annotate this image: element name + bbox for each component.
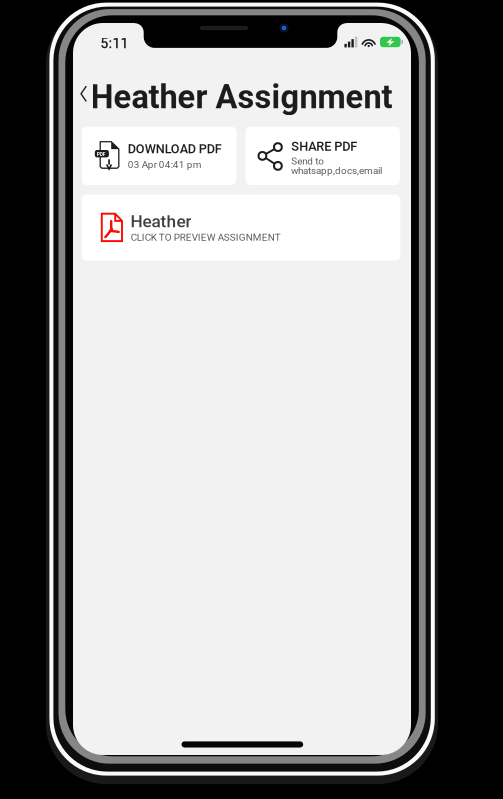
staticText: DOWNLOAD PDF bbox=[128, 142, 222, 156]
staticText: 03 Apr 04:41 pm bbox=[128, 159, 202, 170]
staticText: whatsapp,docs,email bbox=[291, 165, 382, 176]
staticText: CLICK TO PREVIEW ASSIGNMENT bbox=[131, 231, 281, 243]
button[interactable]: PDF bbox=[82, 127, 236, 185]
staticText: SHARE PDF bbox=[291, 139, 357, 154]
button[interactable]: SHARE PDF bbox=[245, 127, 400, 185]
staticText: PDF bbox=[97, 151, 106, 157]
staticText: Heather Assignment bbox=[90, 78, 392, 116]
button[interactable]: Back bbox=[75, 76, 93, 112]
staticText: Send to bbox=[291, 155, 324, 167]
staticText: 5:11 bbox=[100, 35, 128, 52]
staticText: Heather bbox=[130, 211, 191, 232]
button[interactable]: Heather bbox=[82, 195, 400, 261]
